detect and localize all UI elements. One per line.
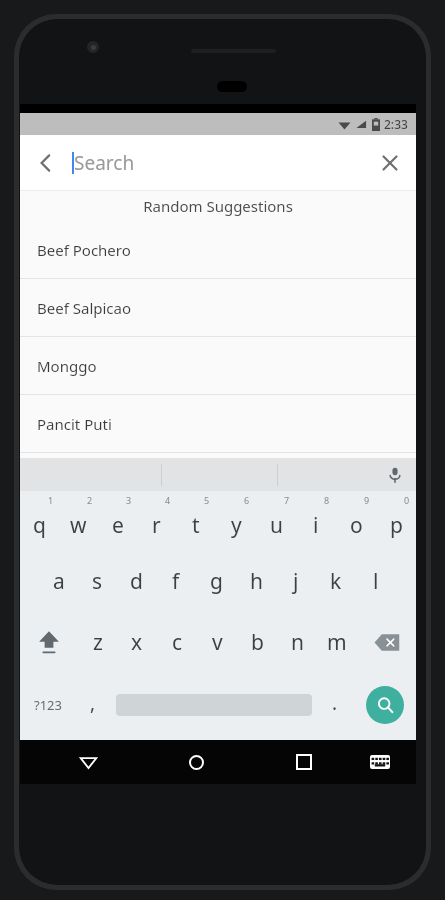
staticText: Beef Salpicao	[37, 298, 132, 318]
button[interactable]: 0	[376, 491, 416, 551]
staticText: v	[212, 628, 223, 657]
staticText: 3	[126, 494, 132, 506]
staticText: m	[327, 628, 347, 657]
staticText: 8	[324, 494, 330, 506]
staticText: r	[152, 511, 161, 540]
staticText: y	[231, 511, 242, 540]
staticText: d	[130, 567, 143, 596]
staticText: Beef Pochero	[37, 240, 131, 260]
staticText: 4	[165, 494, 171, 506]
button[interactable]: Switch keyboard	[358, 740, 402, 784]
button[interactable]: x	[117, 612, 157, 673]
button[interactable]: 1	[20, 491, 59, 551]
staticText: h	[250, 567, 263, 596]
staticText: 2	[87, 494, 93, 506]
button[interactable]: j	[276, 551, 316, 612]
staticText: s	[92, 567, 103, 596]
staticText: 0	[404, 494, 410, 506]
button[interactable]: 3	[98, 491, 137, 551]
button[interactable]: Monggo	[20, 337, 416, 395]
staticText: ?123	[34, 696, 62, 714]
button[interactable]: 2	[59, 491, 98, 551]
button[interactable]: 7	[256, 491, 296, 551]
staticText: ,	[90, 690, 96, 716]
button[interactable]: g	[196, 551, 236, 612]
staticText: 9	[364, 494, 370, 506]
button[interactable]: 4	[137, 491, 176, 551]
button[interactable]: Search	[353, 673, 416, 737]
button[interactable]: n	[277, 612, 317, 673]
staticText: q	[33, 511, 46, 540]
button[interactable]: Shift	[20, 612, 78, 673]
button[interactable]: 9	[336, 491, 376, 551]
staticText: o	[350, 511, 363, 540]
button[interactable]: z	[78, 612, 117, 673]
staticText: j	[293, 567, 299, 596]
button[interactable]: k	[316, 551, 356, 612]
staticText: 6	[244, 494, 250, 506]
staticText: x	[131, 628, 143, 657]
button[interactable]: Beef Pochero	[20, 221, 416, 279]
staticText: b	[251, 628, 264, 657]
button[interactable]: 8	[296, 491, 336, 551]
staticText: u	[270, 511, 283, 540]
button[interactable]: Recents	[250, 740, 358, 784]
staticText: n	[291, 628, 304, 657]
staticText: 7	[284, 494, 290, 506]
staticText: a	[53, 567, 65, 596]
button[interactable]: b	[237, 612, 277, 673]
staticText: f	[172, 567, 180, 596]
button[interactable]: 6	[216, 491, 256, 551]
staticText: 5	[204, 494, 210, 506]
button[interactable]: Back	[20, 137, 72, 189]
button[interactable]: a	[39, 551, 78, 612]
button[interactable]: ,	[75, 673, 111, 737]
staticText: g	[210, 567, 223, 596]
staticText: k	[330, 567, 342, 596]
button[interactable]: d	[117, 551, 156, 612]
staticText: c	[172, 628, 183, 657]
button[interactable]: h	[236, 551, 276, 612]
button[interactable]: .	[317, 673, 353, 737]
staticText: 2:33	[384, 116, 408, 132]
button[interactable]: Home	[142, 740, 250, 784]
staticText: 1	[48, 494, 54, 506]
button[interactable]: s	[78, 551, 117, 612]
button[interactable]	[111, 673, 317, 737]
button[interactable]: ?123	[20, 673, 75, 737]
staticText: Monggo	[37, 356, 97, 376]
button[interactable]: Back	[34, 740, 142, 784]
staticText: w	[70, 511, 87, 540]
button[interactable]: v	[197, 612, 237, 673]
button[interactable]: Beef Salpicao	[20, 279, 416, 337]
button[interactable]: Clear	[364, 137, 416, 189]
staticText: .	[332, 690, 338, 716]
button[interactable]: c	[157, 612, 197, 673]
staticText: t	[192, 511, 200, 540]
staticText: i	[313, 511, 319, 540]
button[interactable]: Backspace	[357, 612, 416, 673]
staticText: Search	[74, 150, 135, 176]
staticText: p	[390, 511, 403, 540]
button[interactable]: Voice input	[374, 458, 416, 491]
staticText: Pancit Puti	[37, 414, 112, 434]
staticText: z	[93, 628, 103, 657]
button[interactable]: Pancit Puti	[20, 395, 416, 453]
button[interactable]: l	[356, 551, 396, 612]
staticText: l	[373, 567, 379, 596]
button[interactable]: 5	[176, 491, 216, 551]
button[interactable]: f	[156, 551, 196, 612]
staticText: Random Suggestions	[143, 196, 293, 216]
staticText: e	[112, 511, 124, 540]
button[interactable]: m	[317, 612, 357, 673]
